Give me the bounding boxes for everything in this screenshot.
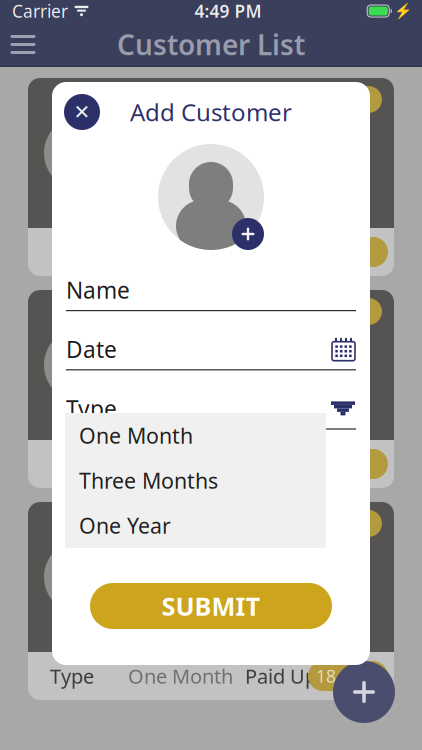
staticText: Type bbox=[66, 393, 117, 423]
button[interactable]: SUBMIT bbox=[90, 583, 332, 629]
button[interactable]: Choose type bbox=[330, 400, 356, 416]
staticText: SUBMIT bbox=[161, 589, 260, 623]
staticText: 18 M bbox=[316, 452, 357, 475]
staticText: Customer List bbox=[117, 26, 305, 63]
staticText: Three Months bbox=[79, 466, 218, 495]
staticText: Paid Up To : bbox=[245, 663, 354, 689]
button[interactable]: Three Months bbox=[65, 458, 326, 503]
staticText: 18 M bbox=[316, 664, 357, 687]
button[interactable]: Add customer bbox=[333, 661, 395, 723]
staticText: One Year bbox=[79, 511, 171, 540]
staticText: Carrier bbox=[12, 0, 68, 22]
button[interactable]: One Year bbox=[65, 503, 326, 548]
button[interactable]: Menu bbox=[0, 22, 46, 66]
staticText: Type bbox=[50, 663, 94, 689]
button[interactable]: Add photo bbox=[232, 218, 264, 250]
staticText: Name bbox=[66, 275, 130, 305]
staticText: ✕ bbox=[73, 101, 90, 123]
staticText: 4:49 PM bbox=[195, 0, 262, 22]
staticText: One Month bbox=[79, 421, 193, 450]
button[interactable]: Close bbox=[64, 94, 100, 130]
staticText: Date bbox=[66, 334, 117, 364]
button[interactable]: One Month bbox=[65, 413, 326, 458]
staticText: Add Customer bbox=[130, 96, 292, 128]
staticText: ⚡ bbox=[394, 3, 412, 19]
staticText: One Month bbox=[128, 663, 233, 689]
button[interactable]: Pick date bbox=[331, 337, 356, 362]
